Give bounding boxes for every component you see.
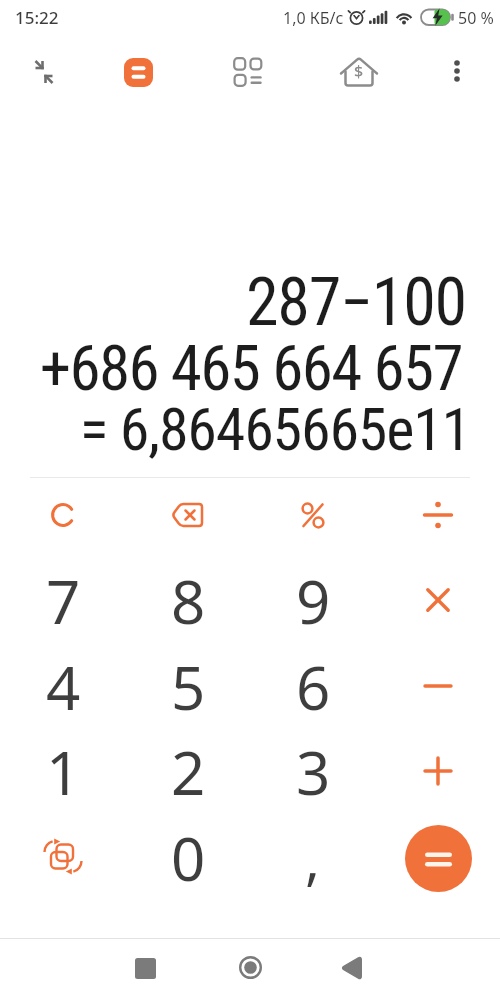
button[interactable]: 5 — [133, 646, 243, 726]
staticText: 2 — [171, 731, 206, 811]
button[interactable]: 4 — [8, 646, 118, 726]
button[interactable] — [14, 42, 74, 102]
button[interactable]: 8 — [133, 560, 243, 640]
staticText: , — [305, 820, 321, 896]
button[interactable] — [205, 938, 295, 996]
staticText: 50 % — [458, 7, 494, 29]
staticText: 5 — [171, 646, 206, 726]
button[interactable] — [100, 939, 190, 997]
button[interactable]: 2 — [133, 731, 243, 811]
button[interactable]: 6 — [258, 646, 368, 726]
button[interactable] — [106, 42, 170, 102]
button[interactable] — [216, 42, 280, 102]
button[interactable]: 7 — [8, 560, 118, 640]
button[interactable]: $ — [327, 42, 391, 102]
staticText: 4 — [46, 646, 81, 726]
button[interactable] — [383, 731, 493, 811]
button[interactable]: 3 — [258, 731, 368, 811]
button[interactable] — [435, 41, 479, 101]
staticText: 1 — [46, 731, 81, 811]
button[interactable] — [383, 646, 493, 726]
button[interactable] — [258, 475, 368, 555]
button[interactable]: 9 — [258, 560, 368, 640]
staticText: 1,0 КБ/с — [283, 7, 344, 29]
staticText: 9 — [296, 560, 331, 640]
button[interactable] — [133, 475, 243, 555]
staticText: 7 — [46, 560, 81, 640]
button[interactable] — [383, 560, 493, 640]
staticText: $ — [354, 60, 364, 82]
button[interactable] — [8, 475, 118, 555]
staticText: +686 465 664 657 — [0, 332, 462, 406]
staticText: 287−100 — [0, 264, 466, 341]
button[interactable]: , — [258, 817, 368, 897]
button[interactable] — [8, 817, 118, 897]
staticText: 0 — [171, 817, 206, 897]
staticText: = 6,86465665e11 — [0, 394, 470, 464]
button[interactable]: 1 — [8, 731, 118, 811]
button[interactable]: 0 — [133, 817, 243, 897]
staticText: 8 — [171, 560, 206, 640]
staticText: 15:22 — [15, 6, 59, 29]
staticText: 3 — [296, 731, 331, 811]
button[interactable] — [383, 475, 493, 555]
staticText: 6 — [296, 646, 331, 726]
button[interactable] — [307, 939, 397, 997]
button[interactable] — [398, 818, 478, 898]
